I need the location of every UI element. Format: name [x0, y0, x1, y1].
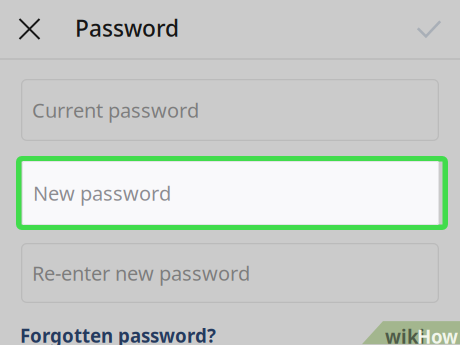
staticText: Re-enter new password	[32, 260, 250, 286]
staticText: Current password	[32, 97, 199, 123]
button[interactable]: Save password	[398, 0, 460, 58]
staticText: Password	[75, 13, 179, 43]
button[interactable]: Re-enter new password	[21, 243, 439, 303]
staticText: How	[417, 324, 458, 345]
staticText: New password	[33, 180, 171, 206]
button[interactable]: Forgotten password?	[20, 323, 216, 345]
button[interactable]: New password	[16, 156, 448, 230]
button[interactable]: Current password	[21, 79, 439, 141]
staticText: wiki	[385, 324, 425, 345]
staticText: Forgotten password?	[20, 323, 216, 345]
button[interactable]: Close	[0, 0, 59, 58]
